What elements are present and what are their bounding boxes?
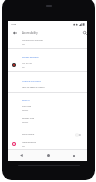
button[interactable]: Back: [10, 28, 19, 37]
button[interactable]: Art to Ally: [8, 60, 87, 71]
button[interactable]: Search: [80, 28, 89, 37]
button[interactable]: Home: [35, 150, 61, 161]
button[interactable]: Back: [8, 150, 35, 161]
staticText: Display size: [22, 117, 34, 120]
staticText: Font size: [22, 105, 32, 108]
staticText: Volume key shortcut: [22, 39, 44, 42]
staticText: Art to Ally: [22, 62, 32, 65]
staticText: Magnification: [22, 141, 37, 144]
button[interactable]: Dark theme: [8, 131, 87, 138]
button[interactable]: Volume key shortcut: [8, 37, 87, 48]
button[interactable]: Display size: [8, 115, 87, 126]
button[interactable]: Font size: [8, 103, 87, 114]
staticText: Off: [22, 43, 25, 45]
staticText: 10:45: [11, 23, 17, 26]
button[interactable]: Text-to-speech output: [8, 83, 87, 92]
button[interactable]: Magnification: [8, 139, 87, 150]
staticText: Default: [22, 121, 29, 123]
staticText: AUDIO & CAPTIONS: [22, 80, 41, 83]
staticText: SCREEN READERS: [22, 56, 39, 59]
staticText: Off: [22, 145, 25, 147]
staticText: Text-to-speech output: [22, 86, 45, 89]
button[interactable]: Recents: [61, 150, 87, 161]
staticText: DISPLAY: [22, 99, 30, 102]
staticText: Accessibility: [22, 31, 38, 35]
staticText: On: [22, 66, 25, 68]
staticText: Dark theme: [22, 133, 75, 136]
staticText: Default: [22, 109, 29, 111]
